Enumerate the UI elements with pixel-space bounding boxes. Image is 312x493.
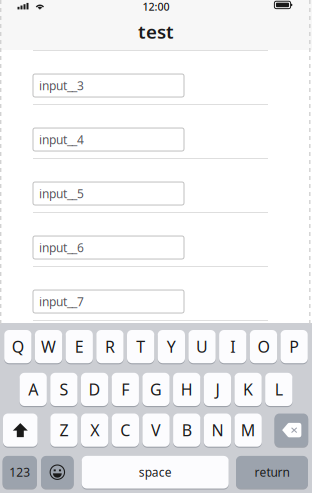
button[interactable]: return (236, 456, 308, 490)
staticText: S (59, 379, 68, 400)
button[interactable]: J (204, 373, 231, 407)
button[interactable]: Delete (274, 413, 308, 448)
staticText: N (211, 419, 223, 441)
button[interactable]: B (173, 413, 200, 448)
staticText: C (120, 419, 130, 441)
button[interactable]: H (173, 373, 200, 407)
button[interactable]: Emoji (41, 456, 74, 490)
staticText: E (75, 336, 84, 357)
button[interactable]: input__7 (33, 290, 184, 313)
staticText: A (28, 379, 38, 400)
staticText: input__4 (39, 131, 84, 147)
staticText: Y (167, 336, 176, 357)
staticText: R (105, 336, 115, 357)
staticText: input__5 (39, 185, 84, 201)
button[interactable]: D (81, 373, 108, 407)
button[interactable]: F (112, 373, 139, 407)
staticText: O (257, 336, 269, 357)
button[interactable]: V (142, 413, 170, 448)
staticText: W (41, 336, 56, 357)
staticText: test (138, 19, 174, 44)
staticText: F (121, 379, 129, 400)
staticText: B (182, 419, 192, 441)
button[interactable]: Shift (3, 413, 38, 448)
button[interactable]: K (234, 373, 262, 407)
staticText: 123 (9, 464, 30, 480)
button[interactable]: T (127, 330, 154, 364)
button[interactable]: M (234, 413, 262, 448)
staticText: H (181, 379, 193, 400)
staticText: D (89, 379, 101, 400)
button[interactable]: C (112, 413, 139, 448)
button[interactable]: space (82, 456, 229, 490)
button[interactable]: input__3 (33, 74, 184, 97)
button[interactable]: input__5 (33, 182, 184, 205)
staticText: M (241, 419, 256, 441)
staticText: 12:00 (142, 0, 169, 14)
staticText: V (151, 419, 161, 441)
button[interactable]: I (219, 330, 246, 364)
staticText: X (90, 419, 99, 441)
staticText: return (254, 464, 289, 480)
button[interactable]: input__4 (33, 128, 184, 151)
button[interactable]: O (250, 330, 277, 364)
button[interactable]: Y (158, 330, 185, 364)
staticText: I (230, 336, 235, 357)
staticText: space (139, 464, 172, 480)
staticText: Q (12, 336, 24, 357)
staticText: K (243, 379, 253, 400)
staticText: P (289, 336, 299, 357)
button[interactable]: R (96, 330, 124, 364)
button[interactable]: U (188, 330, 216, 364)
staticText: J (215, 379, 219, 400)
staticText: G (150, 379, 162, 400)
button[interactable]: X (81, 413, 108, 448)
staticText: Z (59, 419, 68, 441)
staticText: L (275, 379, 283, 400)
button[interactable]: 123 (3, 456, 37, 490)
staticText: input__6 (39, 239, 84, 255)
staticText: T (136, 336, 145, 357)
button[interactable]: P (280, 330, 308, 364)
button[interactable]: A (19, 373, 47, 407)
button[interactable]: S (50, 373, 77, 407)
button[interactable]: N (204, 413, 231, 448)
staticText: U (196, 336, 208, 357)
staticText: input__3 (39, 77, 84, 93)
staticText: input__7 (39, 293, 84, 309)
button[interactable]: Q (4, 330, 31, 364)
button[interactable]: Z (50, 413, 78, 448)
button[interactable]: G (142, 373, 170, 407)
button[interactable]: W (35, 330, 62, 364)
button[interactable]: input__6 (33, 236, 184, 259)
button[interactable]: E (66, 330, 93, 364)
button[interactable]: L (265, 373, 292, 407)
